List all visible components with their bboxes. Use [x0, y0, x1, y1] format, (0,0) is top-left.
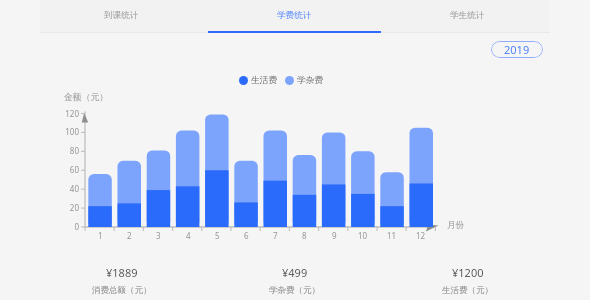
staticText: 5 [215, 230, 220, 241]
staticText: 学费统计 [277, 10, 312, 21]
staticText: 4 [186, 230, 191, 241]
staticText: 学杂费 [297, 75, 324, 86]
staticText: 100 [65, 126, 79, 137]
staticText: 金额（元） [64, 92, 108, 103]
staticText: 40 [69, 183, 79, 194]
staticText: 20 [69, 202, 79, 213]
staticText: 120 [65, 108, 79, 119]
staticText: 6 [244, 230, 249, 241]
staticText: 60 [69, 164, 79, 175]
staticText: ¥1200 [452, 265, 484, 280]
staticText: 80 [69, 145, 79, 156]
staticText: ¥499 [282, 265, 308, 280]
staticText: 学生统计 [450, 10, 485, 21]
staticText: 7 [273, 230, 278, 241]
staticText: 生活费（元） [442, 285, 493, 296]
button[interactable]: 学费统计 [208, 0, 381, 33]
staticText: 8 [302, 230, 307, 241]
staticText: 0 [74, 221, 79, 232]
staticText: 2019 [504, 42, 530, 57]
button[interactable]: 2019 [491, 41, 543, 58]
staticText: 10 [358, 230, 368, 241]
staticText: ¥1889 [106, 265, 138, 280]
staticText: 消费总额（元） [92, 285, 152, 296]
button[interactable]: 到课统计 [35, 0, 208, 33]
staticText: 12 [416, 230, 426, 241]
staticText: 3 [156, 230, 161, 241]
button[interactable]: 学生统计 [381, 0, 554, 33]
staticText: 学杂费（元） [269, 285, 320, 296]
staticText: 9 [332, 230, 337, 241]
staticText: 1 [98, 230, 103, 241]
staticText: 生活费 [251, 75, 278, 86]
staticText: 11 [387, 230, 397, 241]
staticText: 月份 [447, 220, 464, 231]
staticText: 到课统计 [104, 10, 139, 21]
staticText: 2 [127, 230, 132, 241]
